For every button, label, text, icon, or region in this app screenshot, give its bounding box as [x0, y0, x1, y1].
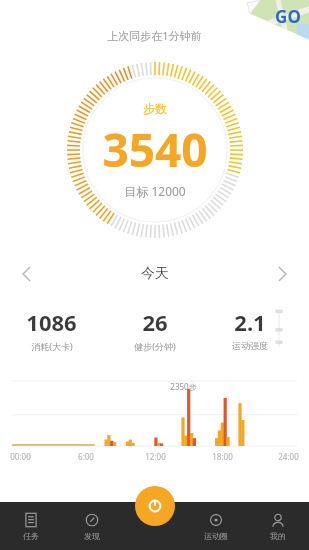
staticText: 目标 12000	[124, 183, 186, 199]
staticText: GO	[275, 5, 301, 28]
button[interactable]: 任务	[0, 502, 61, 550]
button[interactable]: 步数	[67, 62, 243, 238]
staticText: 任务	[23, 531, 39, 541]
button[interactable]: Next day	[265, 257, 299, 291]
button[interactable]: 1086	[0, 307, 103, 352]
staticText: 2.1	[234, 307, 266, 337]
staticText: 18:00	[212, 451, 233, 462]
staticText: 1086	[26, 307, 77, 337]
staticText: 上次同步在1分钟前	[107, 28, 202, 43]
button[interactable]: Previous day	[10, 257, 44, 291]
staticText: 发现	[84, 531, 100, 541]
staticText: 运动强度	[232, 340, 268, 351]
button[interactable]: 运动圈	[185, 502, 247, 550]
staticText: 消耗(大卡)	[31, 340, 73, 352]
button[interactable]: 我的	[247, 502, 309, 550]
staticText: 26	[142, 307, 168, 337]
staticText: 3540	[102, 118, 208, 181]
staticText: 12:00	[145, 451, 166, 462]
staticText: 00:00	[10, 451, 31, 462]
staticText: 6:00	[78, 451, 94, 462]
button[interactable]: Open map GO	[247, 0, 309, 46]
staticText: 24:00	[278, 451, 299, 462]
staticText: 健步(分钟)	[134, 340, 176, 352]
staticText: 2350步	[170, 381, 197, 392]
staticText: 运动圈	[204, 531, 228, 541]
button[interactable]: Start activity	[135, 486, 175, 526]
staticText: 步数	[143, 101, 167, 116]
button[interactable]: 26	[103, 307, 206, 352]
staticText: 今天	[141, 265, 169, 283]
staticText: 我的	[270, 531, 286, 541]
button[interactable]: 发现	[61, 502, 123, 550]
